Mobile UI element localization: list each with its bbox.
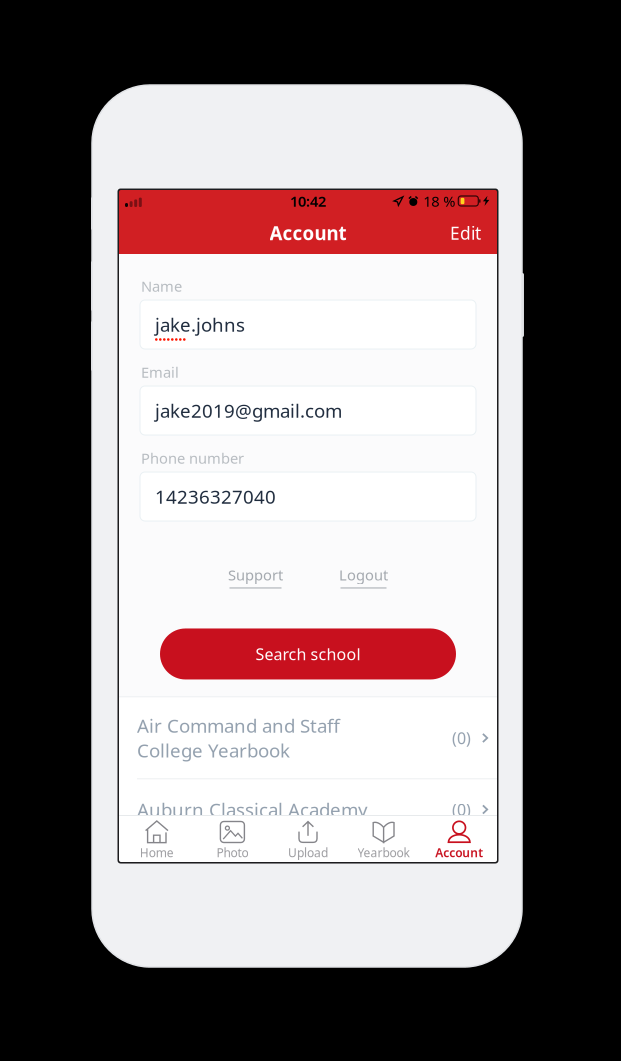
staticText: Air Command and Staff College Yearbook	[137, 713, 340, 763]
button[interactable]: Logout	[339, 565, 388, 588]
button[interactable]: Edit	[442, 213, 489, 252]
staticText: (0)	[452, 727, 471, 749]
staticText: Logout	[339, 565, 388, 584]
button[interactable]: Photo	[195, 816, 270, 862]
button[interactable]: Yearbook	[346, 816, 421, 862]
staticText: Upload	[288, 844, 328, 860]
button[interactable]: Air Command and Staff College Yearbook	[119, 697, 497, 778]
staticText: Home	[140, 844, 174, 860]
button[interactable]: Auburn Classical Academy	[119, 779, 497, 839]
staticText: Search school	[255, 643, 360, 665]
button[interactable]: Home	[119, 816, 195, 862]
staticText: 14236327040	[155, 484, 276, 509]
staticText: 18 %	[423, 191, 455, 211]
staticText: Support	[228, 565, 283, 584]
staticText: Auburn Classical Academy	[137, 797, 368, 822]
staticText: Account	[435, 844, 483, 860]
staticText: jake.johns	[155, 312, 245, 337]
staticText: Photo	[216, 844, 248, 860]
staticText: Account	[269, 221, 346, 245]
staticText: Name	[141, 276, 182, 296]
staticText: jake2019@gmail.com	[155, 398, 342, 423]
staticText: Yearbook	[358, 844, 410, 860]
staticText: Phone number	[141, 448, 244, 468]
staticText: Email	[141, 362, 179, 382]
button[interactable]: Search school	[160, 628, 456, 679]
button[interactable]: Upload	[270, 816, 346, 862]
button[interactable]: Support	[228, 565, 283, 588]
staticText: (0)	[452, 799, 471, 820]
button[interactable]: Account	[421, 816, 497, 862]
staticText: 10:42	[290, 191, 326, 211]
staticText: Edit	[450, 221, 481, 244]
